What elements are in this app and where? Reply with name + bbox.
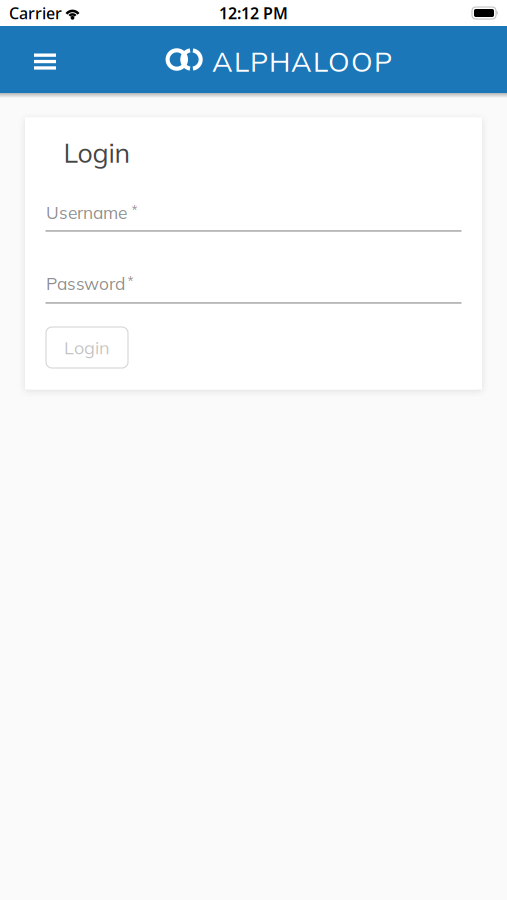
- button[interactable]: Username: [45, 201, 461, 232]
- button[interactable]: Login: [46, 327, 128, 368]
- staticText: *: [131, 201, 137, 218]
- staticText: Login: [64, 336, 110, 359]
- button[interactable]: Menu: [0, 41, 72, 82]
- button[interactable]: Password: [45, 272, 461, 304]
- staticText: Username: [46, 201, 127, 223]
- staticText: 12:12 PM: [219, 2, 288, 24]
- staticText: Carrier: [9, 2, 62, 24]
- staticText: *: [127, 272, 133, 289]
- staticText: ALPHALOOP: [212, 43, 392, 79]
- staticText: Login: [63, 136, 130, 169]
- staticText: Password: [46, 272, 125, 294]
